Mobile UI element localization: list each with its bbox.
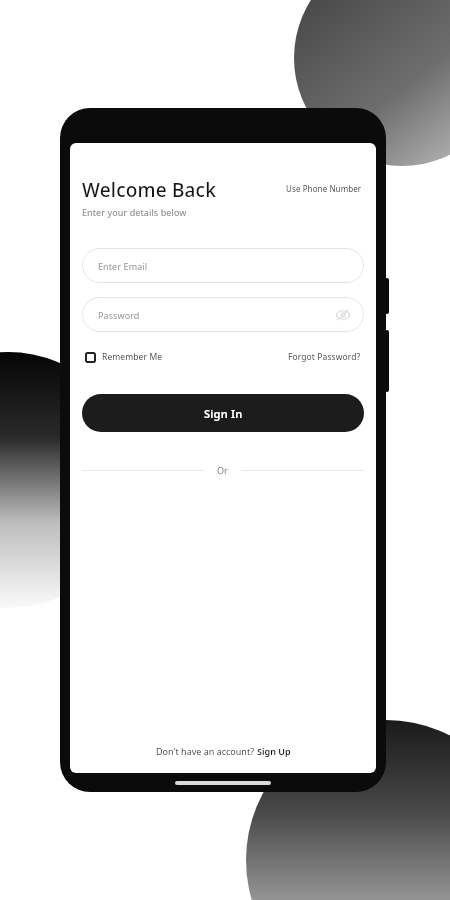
button[interactable]: Toggle password visibility <box>336 308 350 322</box>
staticText: Enter your details below <box>82 206 187 218</box>
button[interactable]: Forgot Password? <box>286 348 363 366</box>
staticText: Enter Email <box>98 260 148 272</box>
staticText: Password <box>98 309 140 321</box>
staticText: Remember Me <box>102 351 163 363</box>
staticText: Welcome Back <box>82 177 216 203</box>
button[interactable]: Sign In <box>82 394 364 432</box>
button[interactable]: Password <box>82 297 364 332</box>
staticText: Sign Up <box>257 745 291 757</box>
staticText: Forgot Password? <box>288 351 361 363</box>
button[interactable]: Remember Me <box>83 348 165 366</box>
staticText: Use Phone Number <box>286 183 362 194</box>
button[interactable]: Enter Email <box>82 248 364 283</box>
button[interactable]: Sign Up <box>257 745 291 757</box>
staticText: Don't have an account? <box>156 745 257 757</box>
button[interactable]: Use Phone Number <box>284 181 364 196</box>
staticText: Sign In <box>204 406 243 421</box>
staticText: Or <box>217 464 228 476</box>
